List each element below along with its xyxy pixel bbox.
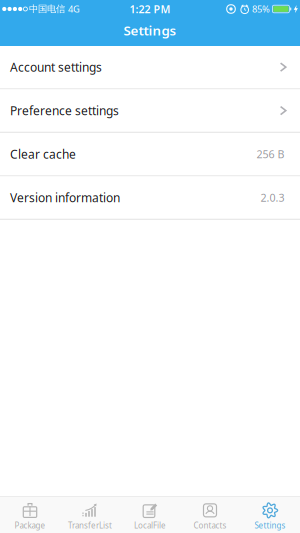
button[interactable]: Preference settings: [0, 89, 300, 132]
button[interactable]: LocalFile: [120, 497, 180, 533]
staticText: 1:22 PM: [129, 2, 170, 16]
staticText: TransferList: [68, 520, 112, 531]
button[interactable]: Package: [0, 497, 60, 533]
button[interactable]: Version information: [0, 176, 300, 219]
staticText: 2.0.3: [260, 190, 284, 205]
staticText: Contacts: [193, 520, 226, 531]
staticText: 85%: [252, 3, 270, 15]
button[interactable]: Clear cache: [0, 133, 300, 175]
button[interactable]: Account settings: [0, 46, 300, 88]
staticText: Settings: [254, 520, 285, 531]
staticText: 4G: [68, 3, 80, 15]
staticText: Clear cache: [10, 146, 76, 162]
staticText: LocalFile: [134, 520, 166, 531]
staticText: 中国电信: [29, 3, 65, 15]
staticText: Package: [14, 520, 45, 531]
button[interactable]: Contacts: [180, 497, 240, 533]
staticText: Preference settings: [10, 103, 119, 118]
staticText: Account settings: [10, 59, 102, 75]
staticText: 256 B: [256, 147, 284, 161]
button[interactable]: TransferList: [60, 497, 120, 533]
button[interactable]: Settings: [240, 497, 300, 533]
staticText: Settings: [123, 21, 176, 39]
staticText: Version information: [10, 190, 120, 205]
